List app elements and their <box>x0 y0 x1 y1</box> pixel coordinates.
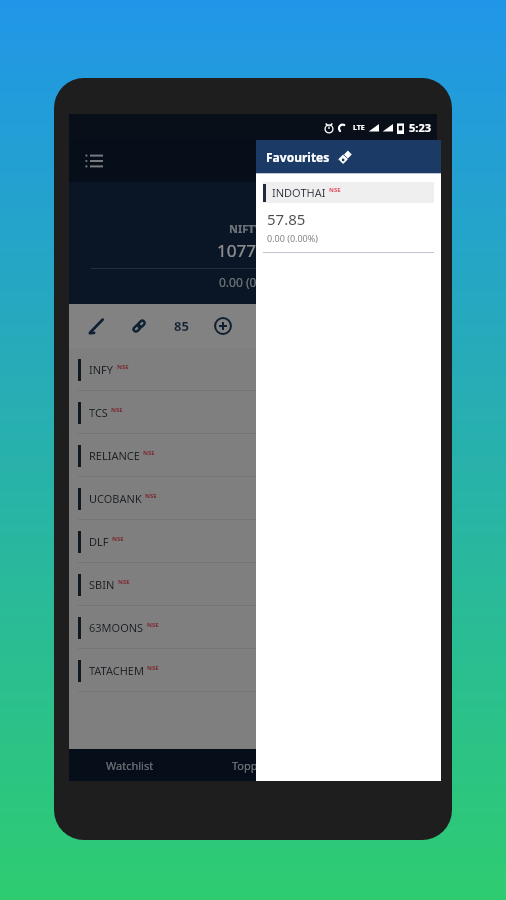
staticText: 5:23 <box>409 120 431 135</box>
staticText: NSE <box>143 449 155 457</box>
staticText: NSE <box>111 406 123 414</box>
button[interactable]: TCS <box>69 391 437 434</box>
button[interactable]: Add <box>211 314 235 338</box>
staticText: SBIN <box>89 577 115 592</box>
staticText: RELIANCE <box>89 448 140 463</box>
button[interactable]: Link <box>127 314 151 338</box>
staticText: 57.85 <box>267 209 306 229</box>
button[interactable]: TATACHEM <box>69 649 437 692</box>
staticText: 0.00 (0.00%) <box>267 232 318 244</box>
button[interactable]: Watchlist <box>69 749 191 781</box>
staticText: 20 Jun <box>365 195 395 209</box>
staticText: Watchlist <box>106 758 154 773</box>
staticText: NSE <box>118 578 130 586</box>
staticText: INDOTHAI <box>272 185 326 200</box>
button[interactable]: Sort <box>169 314 193 338</box>
staticText: DLF <box>89 534 109 549</box>
staticText: Market C <box>276 153 327 169</box>
staticText: NSE <box>117 363 129 371</box>
button[interactable]: Edit <box>85 314 109 338</box>
staticText: NSE <box>147 621 159 629</box>
staticText: NSE <box>329 186 341 194</box>
staticText: NIFTY 50 <box>229 221 277 236</box>
button[interactable]: Toppers <box>191 749 314 781</box>
staticText: 85 <box>174 317 189 335</box>
button[interactable]: SBIN <box>69 563 437 606</box>
staticText: 10772.05 <box>217 239 290 262</box>
staticText: 63MOONS <box>89 620 144 635</box>
staticText: UCOBANK <box>89 491 142 506</box>
button[interactable]: DLF <box>69 520 437 563</box>
staticText: LTE <box>353 123 365 133</box>
staticText: Favourites <box>266 149 330 165</box>
staticText: TATACHEM <box>89 663 144 678</box>
button[interactable]: 63MOONS <box>69 606 437 649</box>
staticText: NSE <box>112 535 124 543</box>
button[interactable]: INFY <box>69 348 437 391</box>
button[interactable]: RELIANCE <box>69 434 437 477</box>
button[interactable]: INDOTHAI <box>263 182 434 253</box>
staticText: 0.00 (0.00%) <box>219 274 287 290</box>
button[interactable]: Menu <box>77 144 111 178</box>
staticText: NSE <box>147 664 159 672</box>
staticText: Toppers <box>232 758 274 773</box>
other: Favourites icon <box>338 150 353 165</box>
staticText: INFY <box>89 362 114 377</box>
button[interactable]: UCOBANK <box>69 477 437 520</box>
staticText: TCS <box>89 405 108 420</box>
staticText: NSE <box>145 492 157 500</box>
